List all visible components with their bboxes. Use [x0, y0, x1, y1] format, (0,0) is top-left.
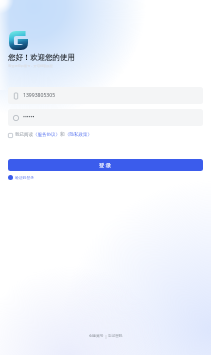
- other: Agree: [8, 133, 13, 138]
- staticText: 《隐私政策》: [65, 132, 92, 138]
- button[interactable]: 登 录: [8, 159, 203, 171]
- button[interactable]: Password: [8, 109, 203, 126]
- staticText: 我已阅读: [15, 132, 33, 138]
- staticText: 《服务协议》: [33, 132, 60, 138]
- button[interactable]: 忘记密码: [108, 334, 123, 339]
- button[interactable]: Agree: [8, 132, 92, 138]
- other: Phone: [13, 93, 19, 99]
- other: SMS code login: [8, 175, 13, 180]
- staticText: ••••••: [23, 114, 35, 121]
- button[interactable]: 创建账号: [89, 334, 104, 339]
- staticText: 13993805305: [23, 92, 56, 99]
- button[interactable]: Phone: [8, 87, 203, 104]
- button[interactable]: SMS code login: [8, 175, 34, 180]
- other: Password: [13, 115, 19, 121]
- staticText: |: [104, 334, 108, 339]
- staticText: 请登录您的账号，开启精彩旅程: [8, 64, 53, 68]
- staticText: 登 录: [99, 161, 112, 168]
- staticText: 和: [60, 132, 65, 138]
- staticText: 验证码登录: [15, 175, 34, 180]
- staticText: 您好！欢迎您的使用: [8, 53, 75, 62]
